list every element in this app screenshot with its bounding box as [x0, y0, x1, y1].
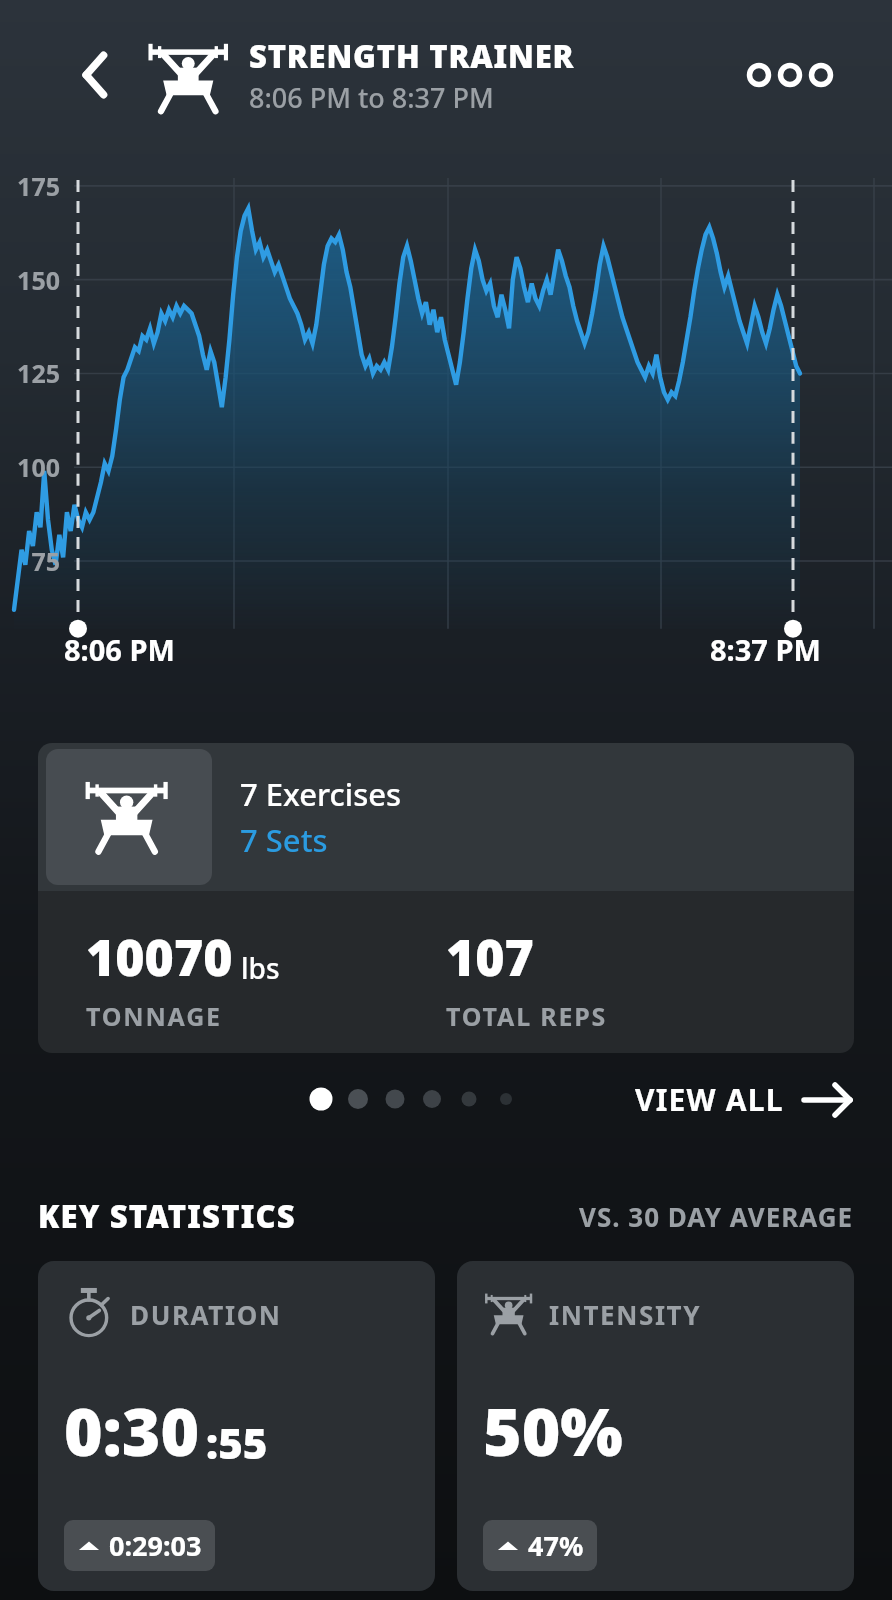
button[interactable]: INTENSITY	[457, 1261, 854, 1591]
staticText: TOTAL REPS	[446, 999, 608, 1033]
staticText: lbs	[241, 949, 280, 987]
staticText: KEY STATISTICS	[38, 1195, 296, 1237]
button[interactable]: More options	[740, 43, 840, 107]
staticText: TONNAGE	[86, 999, 222, 1033]
staticText: INTENSITY	[549, 1297, 702, 1332]
staticText: STRENGTH TRAINER	[249, 35, 575, 77]
staticText: :55	[206, 1414, 268, 1471]
staticText: 8:06 PM to 8:37 PM	[249, 79, 494, 116]
staticText: 150	[0, 263, 60, 297]
staticText: 125	[0, 356, 60, 390]
button[interactable]: VIEW ALL	[635, 1079, 854, 1120]
staticText: VIEW ALL	[635, 1079, 784, 1120]
staticText: DURATION	[130, 1297, 282, 1332]
staticText: 8:37 PM	[710, 630, 821, 669]
staticText: 0:29:03	[109, 1527, 202, 1564]
staticText: 107	[446, 923, 534, 991]
staticText: 10070	[86, 923, 233, 991]
button[interactable]: DURATION	[38, 1261, 435, 1591]
staticText: VS. 30 DAY AVERAGE	[579, 1199, 854, 1234]
staticText: 50%	[483, 1385, 623, 1475]
staticText: 100	[0, 450, 60, 484]
staticText: 7 Exercises	[240, 773, 402, 815]
staticText: 47%	[528, 1527, 584, 1564]
button[interactable]: Back	[58, 37, 134, 113]
staticText: 7 Sets	[240, 819, 328, 861]
staticText: 8:06 PM	[64, 630, 175, 669]
staticText: 175	[0, 169, 60, 203]
staticText: 0:30	[64, 1385, 200, 1475]
staticText: 75	[0, 544, 60, 578]
button[interactable]: 7 Exercises	[38, 743, 854, 1053]
